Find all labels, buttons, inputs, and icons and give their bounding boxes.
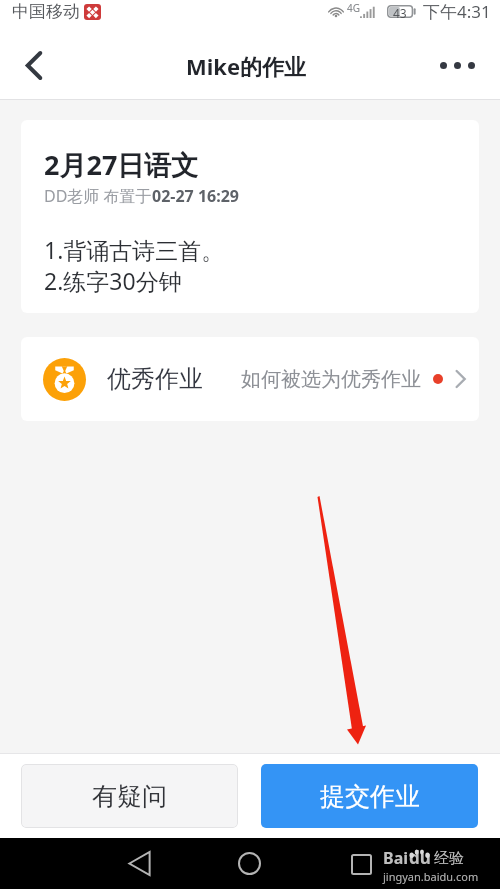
staticText: 下午4:31 xyxy=(423,0,491,23)
staticText: Bai xyxy=(383,847,409,869)
staticText: 4G xyxy=(347,1,360,15)
button[interactable]: Back xyxy=(128,851,151,876)
staticText: 优秀作业 xyxy=(107,364,203,394)
staticText: 02-27 16:29 xyxy=(152,185,239,207)
staticText: 经验 xyxy=(434,849,464,868)
button[interactable]: 有疑问 xyxy=(21,764,238,828)
button[interactable]: 提交作业 xyxy=(261,764,478,828)
staticText: 43 xyxy=(393,5,407,18)
staticText: Mike的作业 xyxy=(186,51,307,81)
staticText: 如何被选为优秀作业 xyxy=(241,367,421,392)
button[interactable]: Home xyxy=(238,852,261,875)
staticText: du xyxy=(409,846,431,869)
button[interactable]: 优秀作业 xyxy=(21,337,479,421)
staticText: 中国移动 xyxy=(12,1,80,22)
button[interactable]: More options xyxy=(427,32,487,99)
button[interactable]: Recents xyxy=(351,854,372,875)
staticText: jingyan.baidu.com xyxy=(383,869,479,884)
staticText: 提交作业 xyxy=(320,781,420,812)
staticText: DD老师 布置于 xyxy=(44,185,152,207)
staticText: 1.背诵古诗三首。 2.练字30分钟 xyxy=(44,234,225,297)
button[interactable]: Back xyxy=(0,32,67,99)
staticText: 2月27日语文 xyxy=(44,146,199,183)
button[interactable]: 2月27日语文 xyxy=(21,120,479,313)
staticText: 有疑问 xyxy=(92,781,167,812)
